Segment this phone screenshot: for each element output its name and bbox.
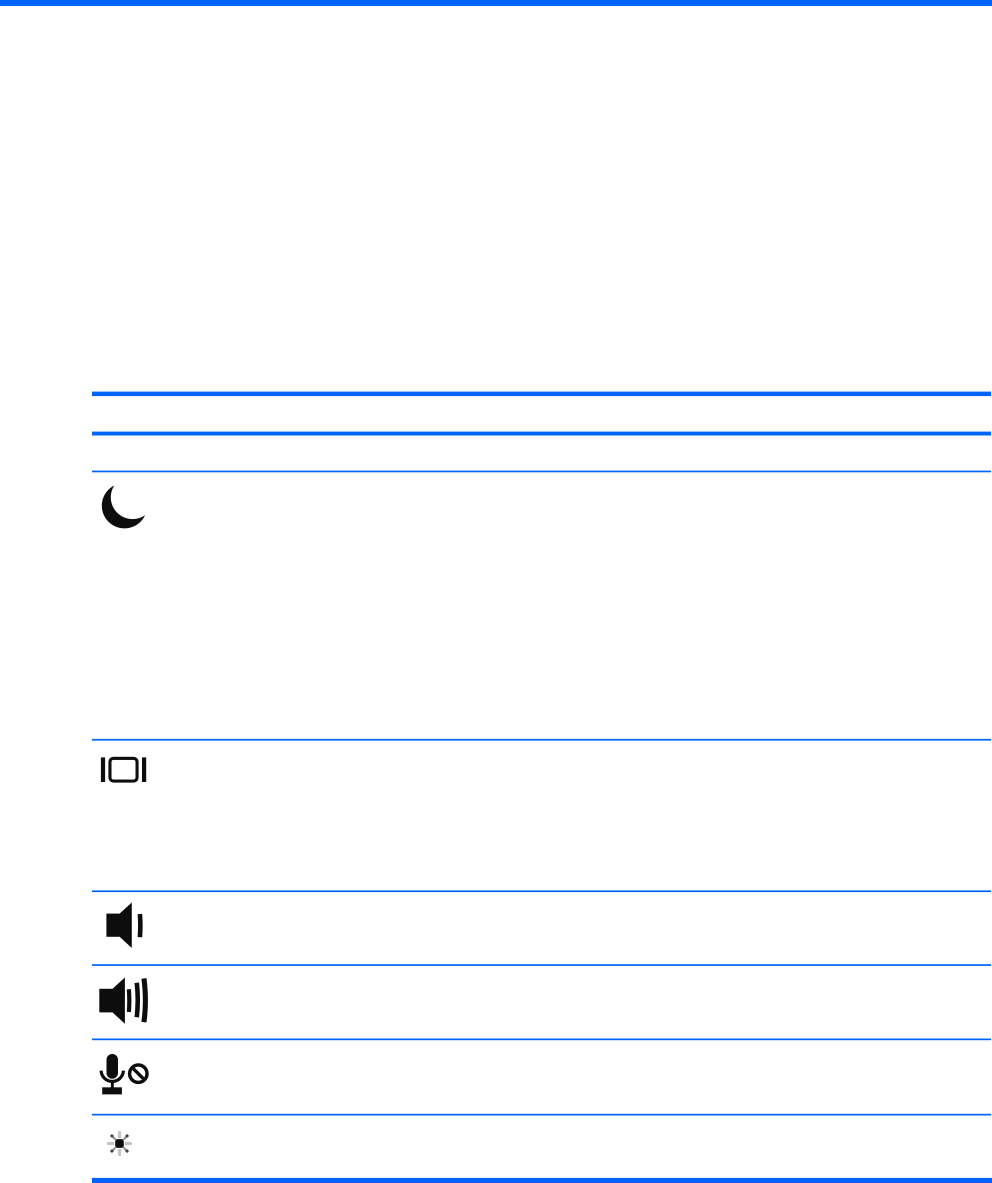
button[interactable]: Switch screen image — [92, 740, 991, 890]
button[interactable]: Sleep — [92, 472, 991, 739]
button[interactable]: Mute microphone — [92, 1040, 991, 1114]
button[interactable]: Key — [92, 396, 991, 432]
button[interactable]: Decrease brightness — [92, 1115, 991, 1178]
button[interactable]: Description — [92, 435, 991, 471]
button[interactable]: Increase volume — [92, 966, 991, 1038]
button[interactable]: Decrease volume — [92, 892, 991, 964]
